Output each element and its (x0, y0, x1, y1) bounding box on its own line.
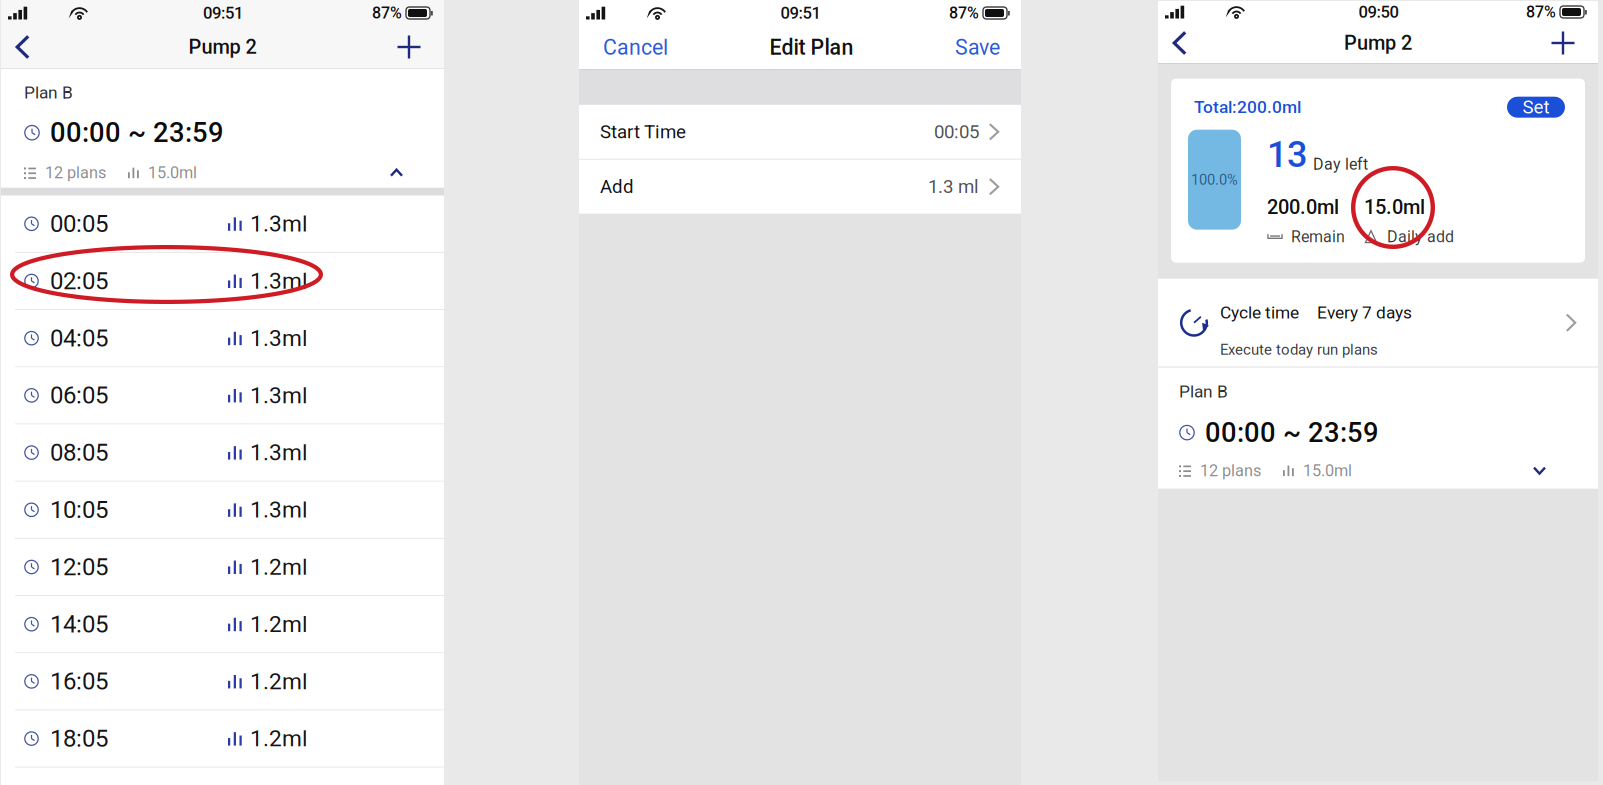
staticText: Every 7 days (1317, 302, 1412, 323)
staticText: 1.3ml (250, 439, 308, 466)
button[interactable]: 02:05 (1, 253, 444, 310)
staticText: Edit Plan (769, 35, 853, 60)
button[interactable]: Save (955, 26, 1000, 68)
button[interactable]: Cancel (603, 26, 668, 68)
staticText: Add (600, 176, 634, 198)
staticText: Cancel (603, 35, 668, 60)
staticText: 87% (949, 4, 979, 22)
staticText: 00:00 ~ 23:59 (1205, 417, 1379, 449)
button[interactable]: 16:05 (1, 653, 444, 710)
staticText: Pump 2 (1344, 31, 1412, 55)
button[interactable]: 12:05 (1, 539, 444, 596)
button[interactable]: 04:05 (1, 310, 444, 367)
staticText: Remain (1291, 227, 1345, 246)
staticText: Cycle time (1220, 302, 1299, 323)
staticText: 1.2ml (250, 668, 308, 695)
staticText: 87% (372, 4, 402, 22)
staticText: 02:05 (50, 267, 108, 295)
staticText: 12 plans (45, 163, 106, 182)
staticText: 09:51 (203, 3, 243, 23)
staticText: 10:05 (50, 496, 108, 524)
staticText: Pump 2 (188, 35, 256, 59)
staticText: 1.3ml (250, 268, 308, 294)
staticText: 16:05 (50, 667, 108, 695)
button[interactable]: 00:05 (1, 196, 444, 253)
staticText: 1.3ml (250, 382, 308, 409)
button[interactable]: Plan B (1158, 368, 1598, 489)
staticText: Day left (1313, 155, 1368, 174)
staticText: 1.3ml (250, 325, 308, 351)
staticText: 1.3ml (250, 496, 308, 523)
staticText: 14:05 (50, 610, 108, 638)
staticText: 04:05 (50, 324, 108, 352)
staticText: 100.0% (1191, 171, 1238, 188)
staticText: Plan B (1179, 381, 1228, 402)
staticText: Start Time (600, 121, 686, 143)
staticText: 200.0ml (1267, 195, 1339, 219)
button[interactable]: Set (1507, 97, 1565, 118)
staticText: Execute today run plans (1220, 341, 1378, 358)
staticText: 00:05 (50, 210, 108, 238)
button[interactable]: Cycle time (1158, 279, 1598, 367)
staticText: 1.2ml (250, 725, 308, 752)
staticText: Total:200.0ml (1194, 97, 1301, 117)
staticText: 18:05 (50, 724, 108, 753)
staticText: Daily add (1387, 227, 1454, 246)
staticText: 00:05 (934, 121, 979, 143)
staticText: Set (1522, 96, 1549, 118)
button[interactable]: Plan B (1, 69, 444, 188)
staticText: 1.2ml (250, 611, 308, 637)
staticText: 1.2ml (250, 554, 308, 580)
staticText: 09:51 (780, 3, 820, 23)
button[interactable]: 06:05 (1, 367, 444, 424)
staticText: 06:05 (50, 381, 108, 409)
staticText: 12 plans (1200, 461, 1261, 480)
staticText: 08:05 (50, 438, 108, 467)
staticText: 15.0ml (1364, 195, 1425, 219)
button[interactable]: Back (16, 26, 52, 68)
button[interactable]: 14:05 (1, 596, 444, 653)
button[interactable]: Add (1539, 23, 1575, 63)
staticText: 12:05 (50, 553, 108, 581)
staticText: 13 (1267, 133, 1307, 176)
staticText: 15.0ml (148, 163, 197, 182)
button[interactable]: 08:05 (1, 424, 444, 482)
staticText: 00:00 ~ 23:59 (50, 117, 224, 149)
button[interactable]: 18:05 (1, 710, 444, 768)
staticText: 87% (1526, 3, 1556, 21)
staticText: 1.3 ml (928, 176, 979, 198)
button[interactable]: Back (1173, 23, 1209, 63)
button[interactable]: Add (579, 160, 1021, 214)
staticText: 1.3ml (250, 210, 308, 237)
button[interactable]: Add (385, 26, 421, 68)
staticText: 09:50 (1358, 2, 1398, 22)
staticText: 15.0ml (1303, 461, 1352, 480)
button[interactable]: Start Time (579, 105, 1021, 159)
button[interactable]: 10:05 (1, 482, 444, 539)
staticText: Plan B (24, 82, 73, 103)
staticText: Save (955, 35, 1000, 60)
